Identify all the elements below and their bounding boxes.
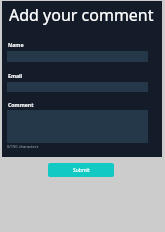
staticText: Name [8,41,24,48]
staticText: Add your comment [9,4,154,26]
staticText: 0/150 characters [7,144,39,149]
staticText: Email [8,72,23,79]
button[interactable]: Submit [48,163,114,177]
staticText: Submit [73,167,90,174]
staticText: Comment [8,101,34,108]
